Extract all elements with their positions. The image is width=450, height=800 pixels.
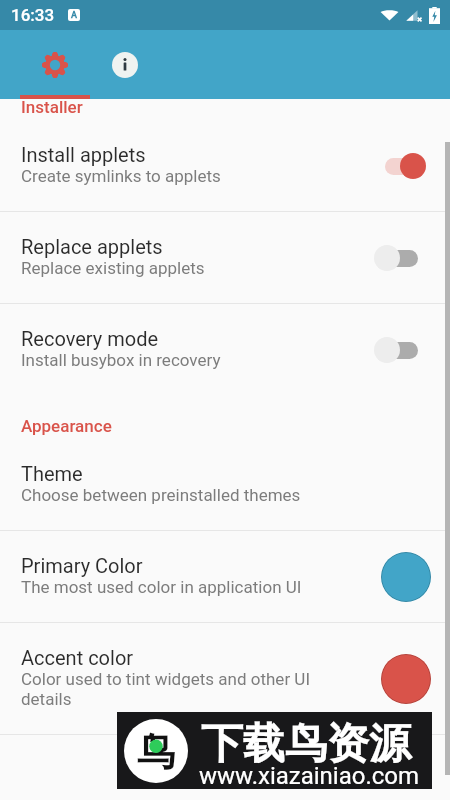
staticText: 下载鸟资源 — [201, 718, 411, 771]
button[interactable]: Background — [0, 735, 450, 777]
staticText: Recovery mode — [21, 327, 159, 350]
staticText: 16:33 — [11, 5, 55, 25]
button[interactable]: Recovery mode — [0, 304, 450, 395]
staticText: Installer — [21, 97, 83, 117]
button[interactable]: Primary Color — [0, 531, 450, 622]
staticText: Install applets — [21, 143, 146, 166]
staticText: Replace applets — [21, 235, 163, 258]
staticText: Install busybox in recovery — [21, 350, 221, 370]
staticText: Primary Color — [21, 554, 143, 577]
staticText: Choose between preinstalled themes — [21, 485, 301, 505]
staticText: 鸟 — [137, 728, 175, 776]
staticText: www.xiazainiao.com — [199, 762, 420, 790]
staticText: Theme — [21, 462, 83, 485]
staticText: The most used color in application UI — [21, 577, 302, 597]
button[interactable]: Replace applets — [0, 212, 450, 303]
staticText: Color used to tint widgets and other UI … — [21, 669, 336, 709]
button[interactable]: Accent color — [0, 623, 450, 734]
staticText: A — [71, 10, 77, 21]
button[interactable]: Theme — [0, 439, 450, 530]
staticText: Accent color — [21, 646, 134, 669]
button[interactable]: Primary color — [381, 552, 431, 602]
button[interactable]: Background color — [381, 735, 431, 777]
staticText: Create symlinks to applets — [21, 166, 221, 186]
staticText: Appearance — [21, 416, 112, 436]
button[interactable]: Install applets — [0, 120, 450, 211]
button[interactable]: Accent color — [381, 654, 431, 704]
button[interactable]: Settings — [20, 30, 90, 99]
button[interactable]: Info — [90, 30, 160, 99]
staticText: Replace existing applets — [21, 258, 205, 278]
